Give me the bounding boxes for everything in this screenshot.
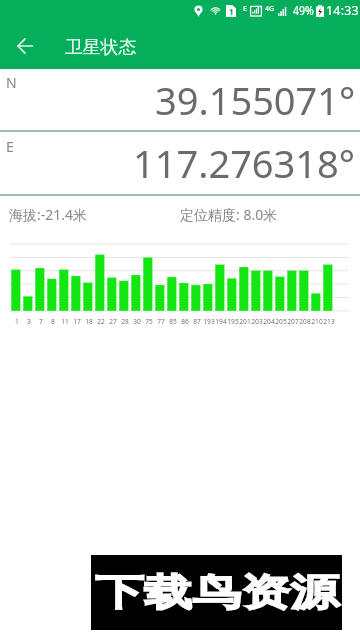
- button[interactable]: N: [0, 69, 360, 130]
- staticText: 205: [275, 317, 287, 325]
- staticText: 194: [215, 317, 227, 325]
- staticText: 17: [73, 317, 81, 325]
- staticText: 1: [229, 6, 234, 17]
- staticText: 49%: [293, 2, 314, 19]
- staticText: N: [6, 73, 17, 92]
- staticText: 207: [287, 317, 299, 325]
- staticText: 8: [51, 317, 55, 325]
- staticText: 39.155071°: [155, 74, 356, 126]
- staticText: 14:33: [326, 2, 359, 19]
- staticText: 86: [181, 317, 189, 325]
- staticText: 卫星状态: [65, 36, 137, 58]
- staticText: 85: [169, 317, 177, 325]
- staticText: 22: [97, 317, 105, 325]
- staticText: 11: [61, 317, 69, 325]
- staticText: 210: [311, 317, 323, 325]
- staticText: 193: [203, 317, 215, 325]
- button[interactable]: E: [0, 132, 360, 193]
- staticText: 1: [15, 317, 19, 325]
- staticText: 87: [193, 317, 201, 325]
- staticText: 204: [263, 317, 275, 325]
- staticText: 定位精度: 8.0米: [180, 205, 278, 224]
- staticText: 203: [251, 317, 263, 325]
- staticText: 208: [299, 317, 311, 325]
- staticText: 4G: [265, 4, 275, 14]
- staticText: 27: [109, 317, 117, 325]
- staticText: E: [6, 137, 14, 156]
- staticText: 下载鸟资源: [95, 569, 339, 616]
- staticText: 77: [157, 317, 165, 325]
- staticText: 117.276318°: [133, 137, 356, 189]
- staticText: 213: [323, 317, 335, 325]
- staticText: 75: [145, 317, 153, 325]
- staticText: 7: [39, 317, 43, 325]
- button[interactable]: Back: [10, 31, 40, 61]
- staticText: 201: [239, 317, 251, 325]
- staticText: 3: [27, 317, 31, 325]
- staticText: 195: [227, 317, 239, 325]
- staticText: 30: [133, 317, 141, 325]
- staticText: 28: [121, 317, 129, 325]
- staticText: 海拔:-21.4米: [9, 205, 88, 224]
- staticText: 18: [85, 317, 93, 325]
- staticText: E: [243, 4, 247, 14]
